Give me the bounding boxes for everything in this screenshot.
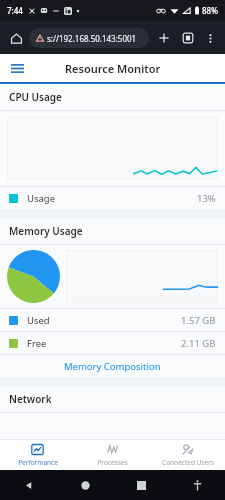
staticText: Resource Monitor [65,61,161,76]
button[interactable]: More options [201,29,219,47]
staticText: Free [27,337,47,350]
button[interactable]: Back [0,470,57,500]
staticText: Performance [18,458,58,467]
staticText: 1.57 GB [181,314,216,327]
button[interactable]: Recents [113,470,169,500]
staticText: 7:44 [7,5,23,16]
button[interactable]: Usage [0,187,225,209]
button[interactable]: Menu [6,57,28,79]
staticText: Memory Composition [64,360,161,373]
staticText: Used [27,314,50,327]
button[interactable]: Performance [0,440,75,470]
button[interactable]: New tab [154,28,174,48]
button[interactable]: Connected Users [150,440,225,470]
button[interactable]: s://192.168.50.143:5001 [29,28,149,48]
button[interactable]: Home [57,470,113,500]
button[interactable]: Accessibility [169,470,225,500]
button[interactable]: Free [0,332,225,354]
staticText: Processes [97,458,128,467]
staticText: 88% [202,5,218,16]
button[interactable]: Processes [75,440,150,470]
button[interactable]: Home [6,28,26,48]
button[interactable]: Memory Composition [0,355,225,377]
button[interactable]: Used [0,309,225,331]
staticText: 13% [197,192,216,205]
staticText: Memory Usage [9,224,83,238]
staticText: CPU Usage [9,90,62,104]
staticText: Network [9,392,52,406]
button[interactable]: Tabs [178,28,198,48]
staticText: s://192.168.50.143:5001 [47,33,137,44]
staticText: Connected Users [162,458,214,467]
staticText: Usage [27,192,56,205]
staticText: 2.11 GB [181,337,216,350]
